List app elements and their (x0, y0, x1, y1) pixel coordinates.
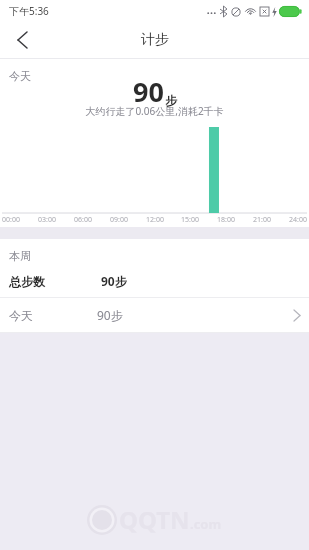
staticText: 90步 (101, 273, 127, 289)
staticText: 00:00 (2, 215, 20, 225)
staticText: 总步数 (9, 274, 45, 289)
staticText: 12:00 (146, 215, 164, 225)
staticText: 21:00 (253, 215, 271, 225)
staticText: 大约行走了0.06公里,消耗2千卡 (85, 104, 224, 118)
staticText: QQTN (119, 503, 190, 536)
staticText: 今天 (9, 69, 31, 83)
staticText: 24:00 (289, 215, 307, 225)
staticText: 步 (165, 93, 177, 108)
staticText: 今天 (9, 308, 33, 323)
staticText: 09:00 (110, 215, 128, 225)
button[interactable]: Back (0, 22, 44, 58)
staticText: 18:00 (217, 215, 235, 225)
staticText: 本周 (9, 249, 31, 263)
staticText: 03:00 (38, 215, 56, 225)
staticText: 15:00 (181, 215, 199, 225)
button[interactable]: 总步数 (0, 265, 309, 297)
button[interactable]: 今天 (0, 298, 309, 332)
staticText: 计步 (141, 31, 169, 49)
staticText: 06:00 (74, 215, 92, 225)
staticText: 90 (133, 73, 164, 110)
staticText: 下午5:36 (9, 4, 49, 18)
staticText: 90步 (97, 307, 123, 323)
